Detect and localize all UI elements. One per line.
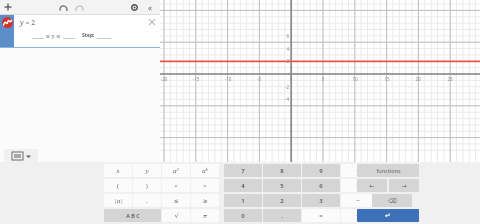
staticText: 0	[282, 76, 300, 82]
staticText: 5	[280, 182, 284, 190]
button[interactable]: |a|	[104, 194, 132, 207]
staticText: →	[401, 182, 407, 189]
button[interactable]: ≥	[191, 194, 219, 207]
button[interactable]: 3	[302, 194, 340, 207]
button[interactable]: Collapse panel	[143, 0, 157, 14]
staticText: 0	[241, 212, 245, 220]
staticText: 6	[319, 182, 323, 190]
staticText: 4	[241, 182, 245, 190]
button[interactable]: π	[191, 209, 219, 222]
staticText: -10	[219, 76, 237, 82]
staticText: |a|	[113, 197, 124, 205]
staticText: (	[117, 182, 119, 190]
staticText: ×	[356, 181, 360, 190]
staticText: 5	[314, 76, 332, 82]
button[interactable]: y	[133, 164, 161, 177]
staticText: +	[356, 211, 360, 220]
staticText: -4	[280, 96, 289, 102]
staticText: ↵	[385, 212, 391, 220]
staticText: -15	[187, 76, 205, 82]
button[interactable]: ÷	[341, 164, 374, 177]
staticText: 2	[280, 197, 284, 205]
staticText: y	[145, 167, 149, 175]
staticText: -2	[280, 84, 289, 90]
button[interactable]: −	[341, 194, 374, 207]
staticText: ≤ y ≤	[44, 32, 63, 39]
button[interactable]: 4	[224, 179, 262, 192]
button[interactable]: Undo	[56, 0, 70, 14]
staticText: 4	[280, 46, 289, 52]
button[interactable]: ⌫	[372, 194, 412, 207]
staticText: 6	[280, 33, 289, 39]
staticText: 8	[280, 167, 284, 175]
staticText: ⌫	[388, 197, 397, 204]
staticText: √	[174, 212, 179, 220]
staticText: ,	[146, 197, 148, 205]
staticText: ÷	[356, 166, 360, 175]
staticText: π	[203, 212, 207, 220]
button[interactable]: √	[162, 209, 190, 222]
staticText: 3	[319, 197, 323, 205]
staticText: 20	[409, 76, 427, 82]
staticText: a2	[173, 167, 179, 175]
button[interactable]: >	[191, 179, 219, 192]
staticText: ≤	[173, 197, 179, 204]
button[interactable]: Settings	[127, 0, 141, 14]
button[interactable]: 6	[302, 179, 340, 192]
button[interactable]: =	[302, 209, 340, 222]
button[interactable]: ×	[341, 179, 374, 192]
button[interactable]: 8	[263, 164, 301, 177]
staticText: A B C	[126, 212, 140, 219]
staticText: -20	[155, 76, 173, 82]
button[interactable]: Add expression	[1, 0, 15, 14]
button[interactable]: ab	[191, 164, 219, 177]
button[interactable]: Redo	[72, 0, 86, 14]
staticText: 1	[241, 197, 245, 205]
staticText: >	[203, 182, 207, 190]
button[interactable]: 0	[224, 209, 262, 222]
staticText: 30	[473, 76, 480, 82]
button[interactable]: +	[341, 209, 374, 222]
button[interactable]: Delete expression	[144, 15, 160, 48]
button[interactable]: 2	[263, 194, 301, 207]
staticText: Step:	[82, 32, 95, 39]
button[interactable]: A B C	[104, 209, 161, 222]
button[interactable]: )	[133, 179, 161, 192]
staticText: ←	[369, 182, 375, 189]
staticText: <	[174, 182, 178, 190]
staticText: .	[281, 212, 283, 220]
staticText: functions	[376, 167, 401, 174]
button[interactable]: ←	[357, 179, 387, 192]
staticText: y = 2	[20, 18, 36, 28]
button[interactable]: (	[104, 179, 132, 192]
button[interactable]: →	[389, 179, 419, 192]
button[interactable]: ↵	[357, 209, 419, 222]
staticText: 2	[280, 58, 289, 64]
button[interactable]: a2	[162, 164, 190, 177]
staticText: 10	[346, 76, 364, 82]
staticText: =	[319, 212, 323, 220]
button[interactable]: 1	[224, 194, 262, 207]
button[interactable]: <	[162, 179, 190, 192]
staticText: «	[148, 2, 153, 13]
button[interactable]: Keyboard options	[4, 149, 38, 162]
button[interactable]: y = 2	[0, 15, 160, 48]
staticText: ≥	[202, 197, 208, 204]
button[interactable]: functions	[357, 164, 419, 177]
staticText: x	[116, 167, 120, 175]
staticText: ab	[202, 167, 208, 175]
staticText: 15	[378, 76, 396, 82]
button[interactable]: 5	[263, 179, 301, 192]
button[interactable]: 9	[302, 164, 340, 177]
staticText: 7	[241, 167, 245, 175]
button[interactable]: ≤	[162, 194, 190, 207]
button[interactable]: 7	[224, 164, 262, 177]
staticText: -5	[250, 76, 268, 82]
staticText: −	[356, 196, 360, 205]
staticText: 9	[319, 167, 323, 175]
button[interactable]: x	[104, 164, 132, 177]
staticText: 25	[441, 76, 459, 82]
staticText: )	[146, 182, 148, 190]
